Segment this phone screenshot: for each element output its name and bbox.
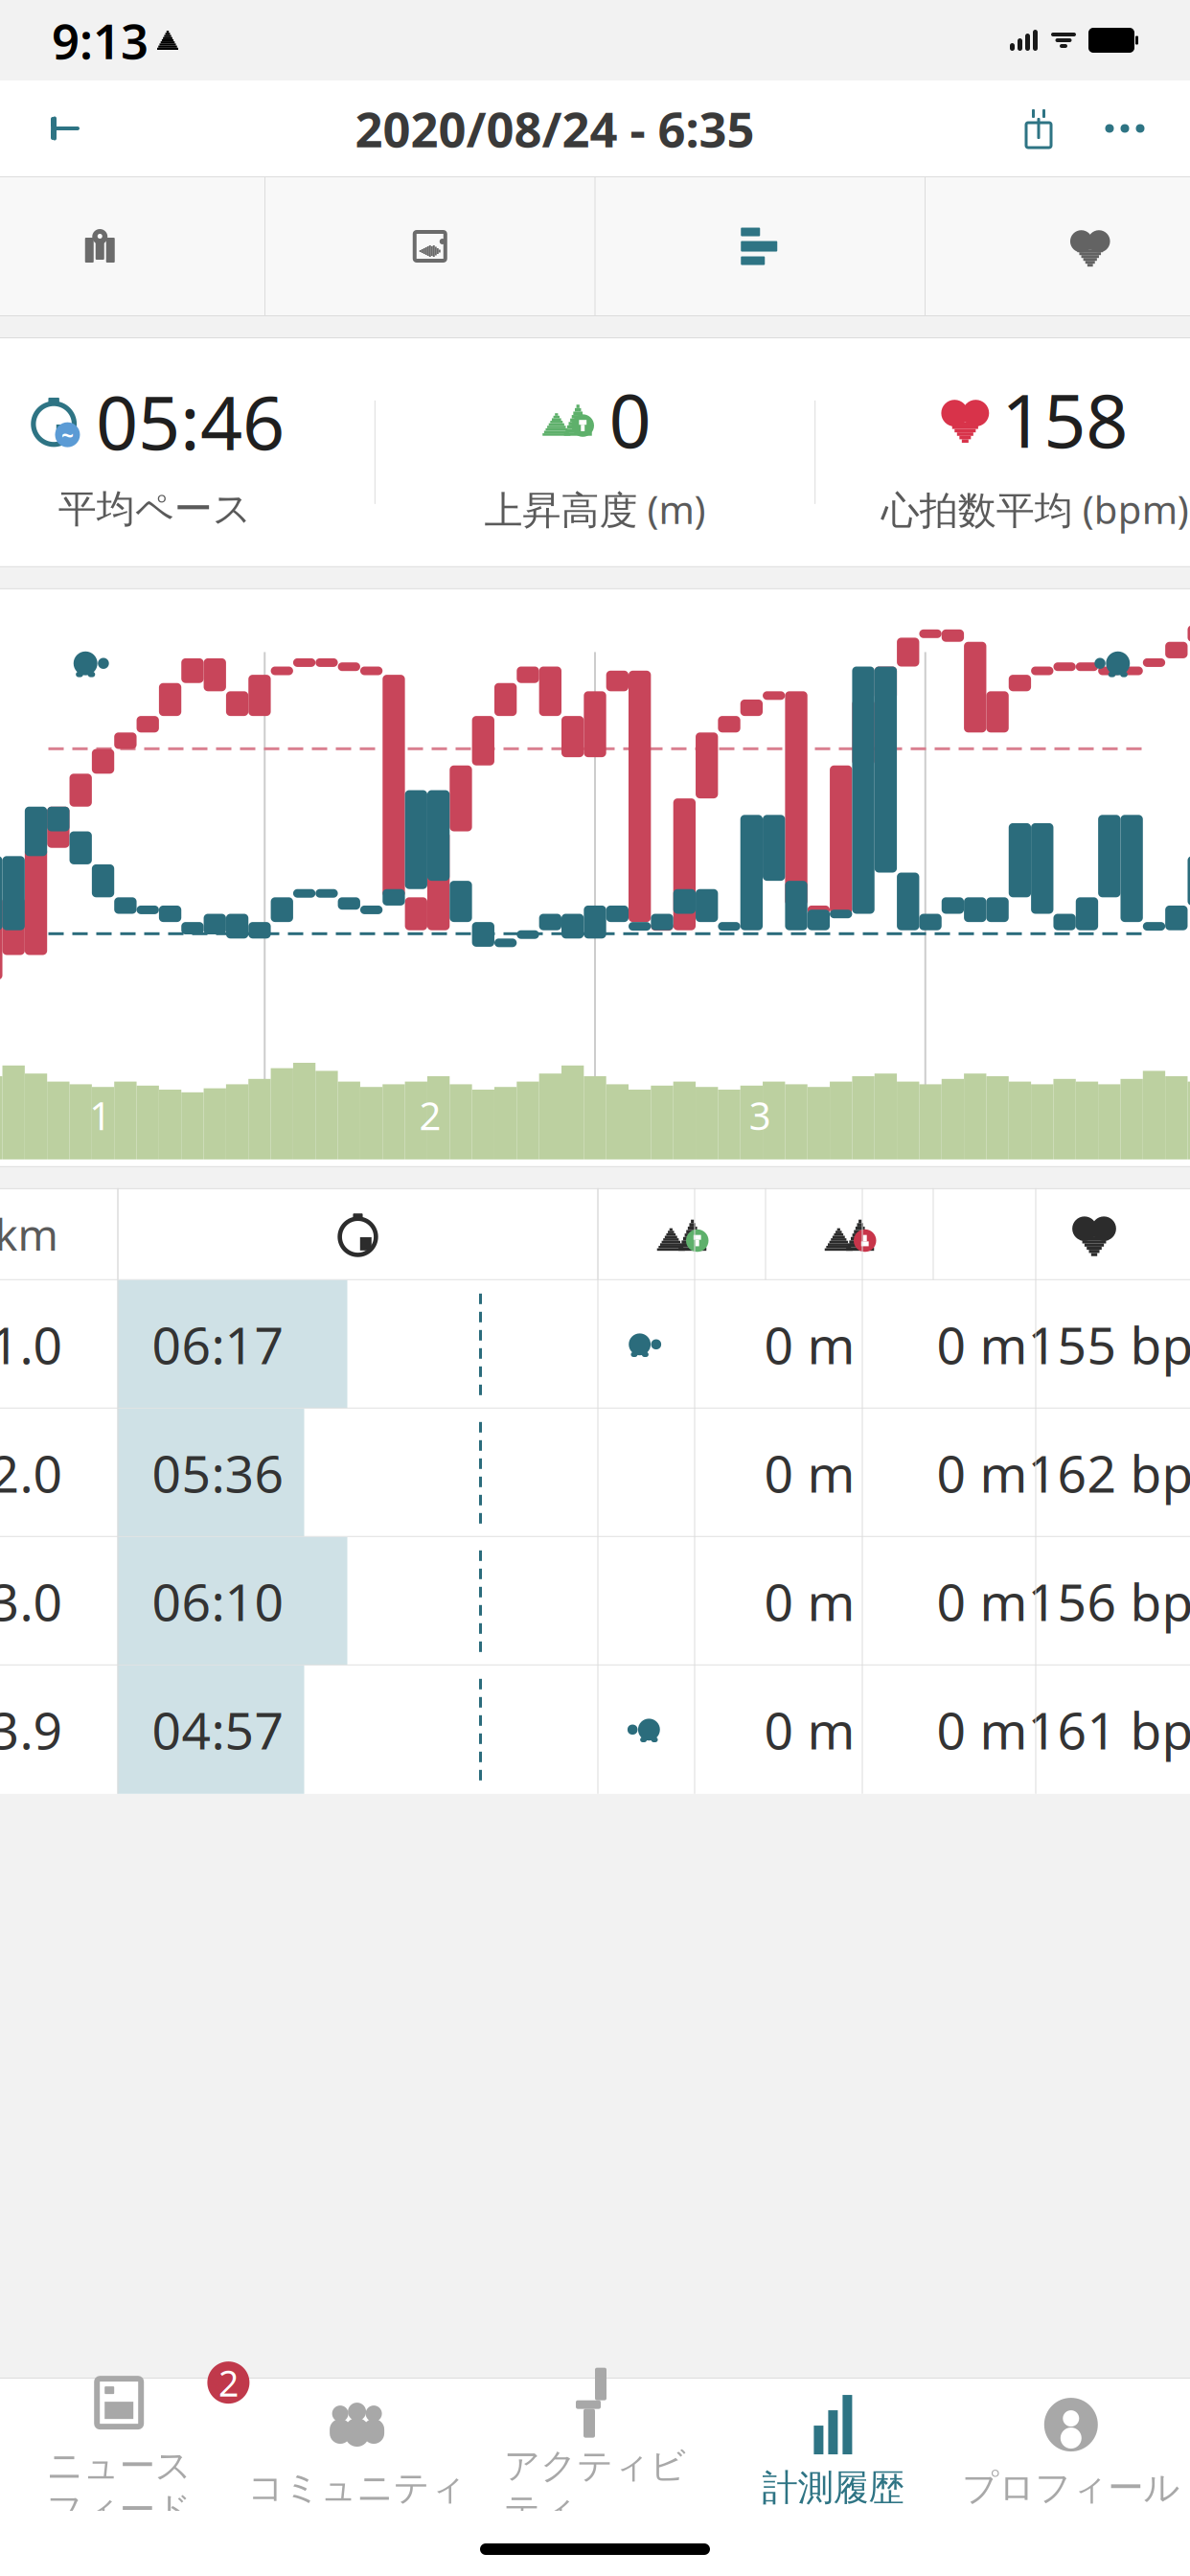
staticText: 2.0 [0, 1439, 63, 1507]
button[interactable]: Map [0, 176, 264, 316]
button[interactable]: 1.0 [0, 1280, 1190, 1409]
button[interactable]: 3.0 [0, 1537, 1190, 1665]
staticText: km [0, 1205, 58, 1263]
staticText: 0 m [937, 1696, 1028, 1764]
staticText: 0 m [937, 1439, 1028, 1507]
button[interactable]: Photos [265, 176, 595, 316]
button[interactable]: コミュニティ [238, 2392, 476, 2511]
staticText: 155 bpm [1028, 1310, 1190, 1378]
button[interactable]: 3.9 [0, 1665, 1190, 1794]
button[interactable]: 2 [0, 2392, 238, 2511]
button[interactable]: Heart rate [926, 176, 1190, 316]
staticText: 3 [749, 1090, 771, 1141]
button[interactable]: Back [19, 82, 111, 174]
staticText: 06:10 [152, 1567, 284, 1635]
staticText: 上昇高度 (m) [484, 484, 706, 535]
staticText: 0 m [764, 1310, 855, 1378]
staticText: 0 m [937, 1310, 1028, 1378]
staticText: 06:17 [152, 1310, 284, 1378]
staticText: 3.0 [0, 1567, 63, 1635]
staticText: 計測履歴 [762, 2466, 904, 2510]
staticText: 04:57 [152, 1696, 284, 1764]
staticText: 平均ペース [58, 486, 252, 533]
staticText: 3.9 [0, 1696, 63, 1764]
staticText: 158 [1002, 370, 1128, 468]
staticText: アクティビティ [504, 2444, 686, 2532]
staticText: 1 [89, 1090, 111, 1141]
staticText: 162 bpm [1028, 1439, 1190, 1507]
button[interactable]: 計測履歴 [714, 2392, 952, 2511]
staticText: コミュニティ [248, 2466, 466, 2510]
staticText: 161 bpm [1028, 1696, 1190, 1764]
staticText: ~ [61, 420, 74, 449]
staticText: 9:13 [52, 8, 149, 73]
staticText: 0 [609, 370, 651, 468]
staticText: 心拍数平均 (bpm) [881, 484, 1189, 535]
button[interactable]: アクティビティ [476, 2392, 714, 2511]
staticText: 0 m [764, 1439, 855, 1507]
button[interactable]: Share [998, 82, 1079, 174]
staticText: ニュースフィード [47, 2444, 191, 2532]
button[interactable]: More [1079, 82, 1171, 174]
staticText: 156 bpm [1028, 1567, 1190, 1635]
staticText: 2020/08/24 - 6:35 [355, 96, 755, 161]
staticText: 0 m [937, 1567, 1028, 1635]
staticText: 05:36 [152, 1439, 284, 1507]
staticText: 0 m [764, 1567, 855, 1635]
button[interactable]: Splits [595, 176, 925, 316]
staticText: 2 [419, 1090, 441, 1141]
staticText: 2 [218, 2359, 238, 2406]
staticText: 0 m [764, 1696, 855, 1764]
staticText: 1.0 [0, 1310, 63, 1378]
button[interactable]: プロフィール [952, 2392, 1190, 2511]
staticText: 05:46 [96, 372, 285, 470]
button[interactable]: 2.0 [0, 1409, 1190, 1537]
staticText: プロフィール [962, 2466, 1180, 2510]
